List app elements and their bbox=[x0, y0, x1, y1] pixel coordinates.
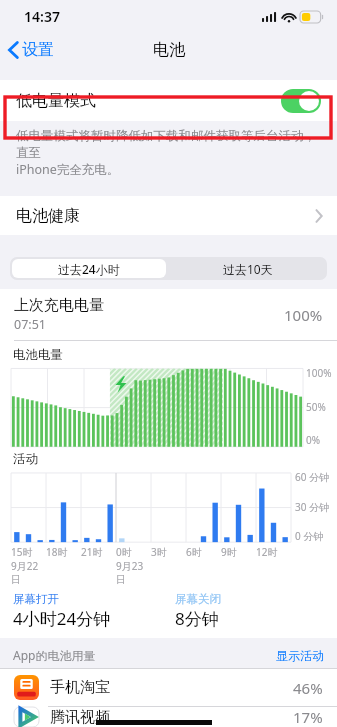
button[interactable]: 显示活动 bbox=[276, 648, 324, 663]
staticText: 100% bbox=[284, 305, 323, 325]
staticText: 腾讯视频 bbox=[50, 708, 110, 727]
staticText: 0时 bbox=[116, 545, 132, 559]
staticText: 14:37 bbox=[24, 7, 60, 26]
button[interactable]: Low Power Mode toggle, on bbox=[281, 89, 321, 113]
staticText: 上次充电电量 bbox=[14, 296, 104, 315]
staticText: 9月22日 bbox=[11, 559, 46, 586]
staticText: 电池 bbox=[153, 40, 185, 60]
staticText: 电池健康 bbox=[16, 206, 315, 226]
staticText: 60 分钟 bbox=[295, 470, 330, 484]
staticText: App的电池用量 bbox=[13, 647, 276, 663]
staticText: 手机淘宝 bbox=[50, 678, 110, 697]
staticText: 15时 bbox=[11, 545, 33, 559]
button[interactable]: 手机淘宝 bbox=[0, 669, 337, 706]
staticText: 低电量模式将暂时降低如下载和邮件获取等后台活动，直至 iPhone完全充电。 bbox=[16, 128, 325, 178]
staticText: 0 分钟 bbox=[295, 529, 324, 543]
button[interactable]: 过去24小时 bbox=[12, 259, 166, 278]
staticText: 显示活动 bbox=[276, 648, 324, 663]
staticText: 活动 bbox=[13, 451, 38, 467]
staticText: 设置 bbox=[22, 40, 54, 60]
staticText: 过去24小时 bbox=[58, 261, 120, 277]
staticText: 30 分钟 bbox=[295, 500, 330, 514]
staticText: 07:51 bbox=[14, 316, 46, 333]
staticText: 低电量模式 bbox=[16, 91, 281, 111]
staticText: 46% bbox=[293, 678, 323, 698]
staticText: 17% bbox=[293, 707, 323, 727]
button[interactable]: 电池健康 bbox=[0, 196, 337, 235]
staticText: 9月23日 bbox=[116, 559, 151, 586]
staticText: 3时 bbox=[151, 545, 167, 559]
staticText: 4小时24分钟 bbox=[13, 607, 111, 630]
staticText: 50% bbox=[306, 400, 326, 414]
staticText: 过去10天 bbox=[223, 261, 273, 277]
staticText: 21时 bbox=[81, 545, 103, 559]
staticText: 100% bbox=[306, 366, 332, 380]
button[interactable]: 腾讯视频 bbox=[0, 707, 337, 727]
staticText: 12时 bbox=[256, 545, 278, 559]
button[interactable]: 设置 bbox=[0, 35, 64, 65]
staticText: 18时 bbox=[46, 545, 68, 559]
staticText: 9时 bbox=[221, 545, 237, 559]
button[interactable]: 过去10天 bbox=[168, 257, 327, 280]
staticText: 屏幕打开 bbox=[13, 592, 59, 606]
staticText: 8分钟 bbox=[175, 607, 219, 630]
staticText: 电池电量 bbox=[13, 347, 63, 363]
button[interactable]: 低电量模式 bbox=[0, 80, 337, 121]
staticText: 6时 bbox=[186, 545, 202, 559]
staticText: 屏幕关闭 bbox=[175, 592, 221, 606]
staticText: 0% bbox=[306, 433, 321, 447]
